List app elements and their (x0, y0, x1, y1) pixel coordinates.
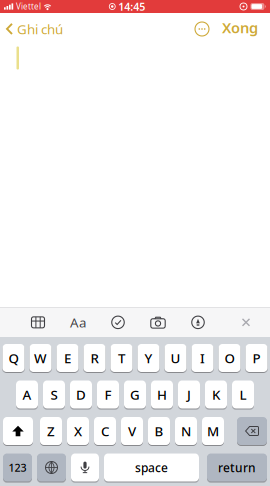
staticText: C (101, 422, 109, 440)
button[interactable]: F (97, 380, 119, 408)
button[interactable]: L (232, 380, 254, 408)
button[interactable]: A (16, 380, 38, 408)
button[interactable]: Q (2, 344, 24, 372)
staticText: Q (8, 349, 18, 367)
staticText: Viettel (16, 1, 41, 12)
button[interactable]: Dictation (71, 453, 99, 481)
staticText: P (252, 349, 260, 367)
button[interactable]: C (94, 417, 116, 445)
button[interactable]: D (70, 380, 92, 408)
button[interactable]: Format (58, 308, 98, 337)
staticText: W (34, 349, 47, 367)
button[interactable]: Shift (3, 417, 33, 445)
button[interactable]: X (67, 417, 89, 445)
button[interactable]: K (205, 380, 227, 408)
staticText: J (187, 386, 191, 403)
button[interactable]: Next keyboard (37, 453, 66, 481)
staticText: Y (144, 349, 152, 367)
button[interactable]: More (194, 21, 210, 37)
button[interactable]: Xong (210, 19, 270, 39)
button[interactable]: Camera (138, 308, 178, 337)
button[interactable]: Z (40, 417, 62, 445)
button[interactable]: W (29, 344, 51, 372)
button[interactable]: V (121, 417, 143, 445)
button[interactable]: H (151, 380, 173, 408)
button[interactable]: P (245, 344, 267, 372)
staticText: N (181, 422, 191, 440)
button[interactable]: Markup (178, 308, 218, 337)
staticText: T (118, 349, 125, 367)
staticText: Z (47, 422, 55, 440)
staticText: space (135, 459, 168, 475)
button[interactable]: S (43, 380, 65, 408)
button[interactable]: N (175, 417, 197, 445)
staticText: L (239, 386, 246, 403)
staticText: E (64, 349, 71, 367)
staticText: Ghi chú (17, 20, 63, 38)
button[interactable]: Checklist (98, 308, 138, 337)
button[interactable]: E (56, 344, 78, 372)
button[interactable]: I (191, 344, 213, 372)
button[interactable]: Dismiss keyboard (234, 308, 258, 337)
staticText: return (218, 459, 256, 475)
staticText: X (74, 422, 82, 440)
staticText: O (224, 349, 234, 367)
button[interactable]: Ghi chú (0, 20, 63, 38)
staticText: S (50, 386, 57, 403)
button[interactable]: U (164, 344, 186, 372)
staticText: U (170, 349, 180, 367)
staticText: Xong (222, 18, 258, 37)
button[interactable]: Y (137, 344, 159, 372)
button[interactable]: Insert table (18, 308, 58, 337)
staticText: B (154, 422, 163, 440)
staticText: H (157, 386, 167, 403)
button[interactable]: M (202, 417, 224, 445)
button[interactable]: B (148, 417, 170, 445)
button[interactable]: R (83, 344, 105, 372)
staticText: V (128, 422, 136, 440)
staticText: M (207, 422, 219, 440)
staticText: 14:45 (118, 0, 145, 14)
button[interactable]: 123 (3, 453, 32, 481)
button[interactable]: space (104, 453, 199, 481)
staticText: R (90, 349, 98, 367)
staticText: 123 (8, 460, 26, 475)
staticText: I (200, 349, 205, 367)
button[interactable]: J (178, 380, 200, 408)
button[interactable]: Delete (237, 417, 267, 445)
button[interactable]: G (124, 380, 146, 408)
staticText: Aa (70, 313, 86, 331)
staticText: D (76, 386, 86, 403)
button[interactable]: O (218, 344, 240, 372)
button[interactable]: return (207, 453, 267, 481)
staticText: F (104, 386, 111, 403)
button[interactable]: T (110, 344, 132, 372)
staticText: G (130, 386, 140, 403)
staticText: A (22, 386, 31, 403)
staticText: K (212, 386, 220, 403)
